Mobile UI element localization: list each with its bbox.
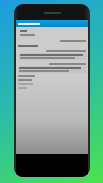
button[interactable]: Message block 2 [18,66,87,73]
button[interactable]: Message block 1 [19,53,87,60]
button[interactable]: App bar [16,20,88,27]
